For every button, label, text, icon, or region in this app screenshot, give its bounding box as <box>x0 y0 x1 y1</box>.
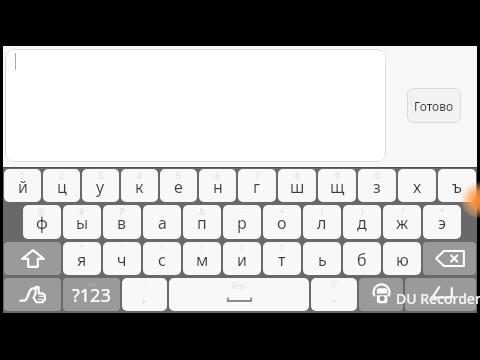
staticText: а <box>158 212 167 234</box>
staticText: ? <box>280 243 284 254</box>
button[interactable]: / <box>383 205 421 239</box>
button[interactable]: 8 <box>278 169 316 202</box>
button[interactable]: # <box>63 205 101 239</box>
staticText: ц <box>57 176 67 198</box>
button[interactable]: & <box>183 205 221 239</box>
staticText: 2 <box>59 170 64 181</box>
staticText: п <box>197 212 207 234</box>
staticText: с <box>158 249 166 271</box>
staticText: & <box>199 206 205 217</box>
button[interactable]: ! <box>223 242 261 275</box>
button[interactable]: Lock <box>359 278 403 311</box>
button[interactable]: !? <box>311 278 357 311</box>
button[interactable]: ъ <box>438 169 476 202</box>
staticText: э <box>438 212 446 234</box>
staticText: 4 <box>137 170 142 181</box>
staticText: , <box>142 285 147 307</box>
button[interactable] <box>5 49 386 162</box>
staticText: _ <box>160 206 164 217</box>
staticText: ф <box>36 212 48 234</box>
staticText: ч <box>117 249 127 271</box>
button[interactable]: Enter <box>405 278 476 311</box>
staticText: б <box>357 249 367 271</box>
button[interactable]: б <box>343 242 381 275</box>
button[interactable]: * <box>423 205 461 239</box>
staticText: м <box>196 249 209 271</box>
button[interactable]: _ <box>143 205 181 239</box>
staticText: " <box>80 243 84 254</box>
staticText: з <box>373 176 381 198</box>
staticText: я <box>77 249 87 271</box>
staticText: 5 <box>176 170 181 181</box>
staticText: ?123 <box>72 283 111 308</box>
button[interactable]: 1 <box>4 169 41 202</box>
staticText: ' <box>121 243 123 254</box>
button[interactable]: ю <box>383 242 421 275</box>
button[interactable]: Backspace <box>423 242 476 275</box>
staticText: = <box>142 279 147 290</box>
button[interactable]: ; <box>183 242 221 275</box>
button[interactable]: 3 <box>82 169 119 202</box>
staticText: ₽ <box>120 206 125 217</box>
button[interactable]: ' <box>103 242 141 275</box>
button[interactable]: ь <box>303 242 341 275</box>
button[interactable]: Gesture typing <box>4 278 61 311</box>
staticText: щ <box>330 176 345 198</box>
staticText: л <box>317 212 327 234</box>
button[interactable]: 6 <box>199 169 236 202</box>
button[interactable]: @ <box>23 205 61 239</box>
staticText: @ <box>38 206 46 217</box>
button[interactable]: ) <box>343 205 381 239</box>
staticText: е <box>174 176 183 198</box>
staticText: т <box>278 249 286 271</box>
staticText: в <box>117 212 127 234</box>
staticText: 8 <box>295 170 300 181</box>
staticText: - <box>241 206 244 217</box>
staticText: DU Recorder <box>396 289 480 308</box>
staticText: + <box>280 206 285 217</box>
button[interactable]: ? <box>263 242 301 275</box>
button[interactable]: = <box>122 278 167 311</box>
button[interactable]: 9 <box>318 169 356 202</box>
button[interactable]: ( <box>303 205 341 239</box>
button[interactable]: 4 <box>121 169 158 202</box>
staticText: х <box>413 176 422 198</box>
button[interactable]: х <box>398 169 436 202</box>
button[interactable]: " <box>63 242 101 275</box>
staticText: # <box>79 206 85 217</box>
staticText: / <box>401 206 404 217</box>
staticText: й <box>18 176 28 198</box>
staticText: ы <box>76 212 89 234</box>
button[interactable]: 5 <box>160 169 197 202</box>
button[interactable]: Shift <box>4 242 61 275</box>
staticText: ю <box>396 249 409 271</box>
button[interactable]: 2 <box>43 169 80 202</box>
button[interactable]: - <box>223 205 261 239</box>
button[interactable]: : <box>143 242 181 275</box>
staticText: Rus <box>231 279 247 291</box>
button[interactable]: Symbols <box>63 278 120 311</box>
button[interactable]: 0 <box>358 169 396 202</box>
button[interactable]: 7 <box>238 169 276 202</box>
staticText: 7 <box>255 170 260 181</box>
staticText: ; <box>201 243 204 254</box>
staticText: ъ <box>452 176 462 198</box>
staticText: ш <box>290 176 305 198</box>
staticText: и <box>237 249 247 271</box>
button[interactable]: ₽ <box>103 205 141 239</box>
staticText: Готово <box>414 98 454 114</box>
staticText: ) <box>361 206 364 217</box>
button[interactable]: Готово <box>407 88 461 123</box>
staticText: !? <box>331 279 337 290</box>
staticText: н <box>213 176 223 198</box>
button[interactable]: + <box>263 205 301 239</box>
staticText: р <box>237 212 247 234</box>
staticText: 6 <box>215 170 220 181</box>
staticText: 0 <box>375 170 380 181</box>
staticText: к <box>135 176 144 198</box>
staticText: 1 <box>20 170 25 181</box>
button[interactable]: Space <box>169 278 309 311</box>
staticText: ( <box>321 206 324 217</box>
staticText: * <box>440 206 445 217</box>
staticText: д <box>357 212 367 234</box>
